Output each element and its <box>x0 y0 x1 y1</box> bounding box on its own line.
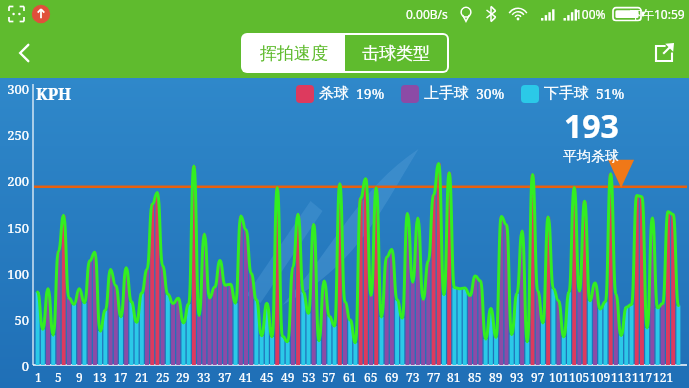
staticText: 45 <box>260 369 274 385</box>
staticText: 101 <box>549 369 570 385</box>
staticText: 117 <box>632 369 653 385</box>
staticText: 50 <box>14 311 29 329</box>
staticText: 100% <box>575 6 606 22</box>
staticText: 61 <box>343 369 357 385</box>
staticText: 13 <box>93 369 107 385</box>
staticText: 93 <box>510 369 524 385</box>
staticText: 77 <box>427 369 441 385</box>
staticText: 250 <box>7 126 29 144</box>
staticText: 30% <box>476 84 505 103</box>
staticText: 37 <box>218 369 232 385</box>
staticText: 杀球 <box>319 84 349 103</box>
staticText: KPH <box>36 83 72 105</box>
staticText: 0.00B/s <box>406 6 448 22</box>
staticText: 1 <box>35 369 42 385</box>
staticText: 105 <box>569 369 590 385</box>
staticText: 29 <box>176 369 190 385</box>
staticText: 19% <box>356 84 385 103</box>
staticText: 下午10:59 <box>630 6 685 22</box>
staticText: 100 <box>7 265 29 283</box>
staticText: 下手球 <box>544 84 589 103</box>
staticText: 41 <box>239 369 253 385</box>
staticText: 200 <box>7 172 29 190</box>
staticText: 81 <box>447 369 461 385</box>
staticText: 69 <box>385 369 399 385</box>
staticText: 21 <box>135 369 149 385</box>
button[interactable]: Back <box>0 28 48 78</box>
staticText: 击球类型 <box>362 43 430 64</box>
staticText: 109 <box>590 369 611 385</box>
staticText: 121 <box>653 369 674 385</box>
staticText: 85 <box>468 369 482 385</box>
staticText: 平均杀球 <box>563 148 619 166</box>
staticText: 113 <box>611 369 632 385</box>
staticText: 51% <box>596 84 625 103</box>
staticText: 33 <box>197 369 211 385</box>
staticText: 65 <box>364 369 378 385</box>
staticText: 57 <box>322 369 336 385</box>
staticText: 17 <box>114 369 128 385</box>
staticText: 9 <box>76 369 83 385</box>
staticText: 25 <box>156 369 170 385</box>
staticText: 89 <box>489 369 503 385</box>
staticText: 上手球 <box>424 84 469 103</box>
button[interactable]: Share <box>639 28 689 78</box>
button[interactable]: 挥拍速度 <box>243 35 345 71</box>
staticText: 49 <box>281 369 295 385</box>
staticText: 5 <box>55 369 62 385</box>
staticText: 53 <box>302 369 316 385</box>
staticText: 73 <box>406 369 420 385</box>
staticText: 150 <box>7 219 29 237</box>
staticText: 挥拍速度 <box>260 43 328 64</box>
staticText: 97 <box>531 369 545 385</box>
staticText: 0 <box>21 357 29 375</box>
staticText: 193 <box>564 104 619 148</box>
staticText: 300 <box>7 80 29 98</box>
button[interactable]: 击球类型 <box>345 35 447 71</box>
